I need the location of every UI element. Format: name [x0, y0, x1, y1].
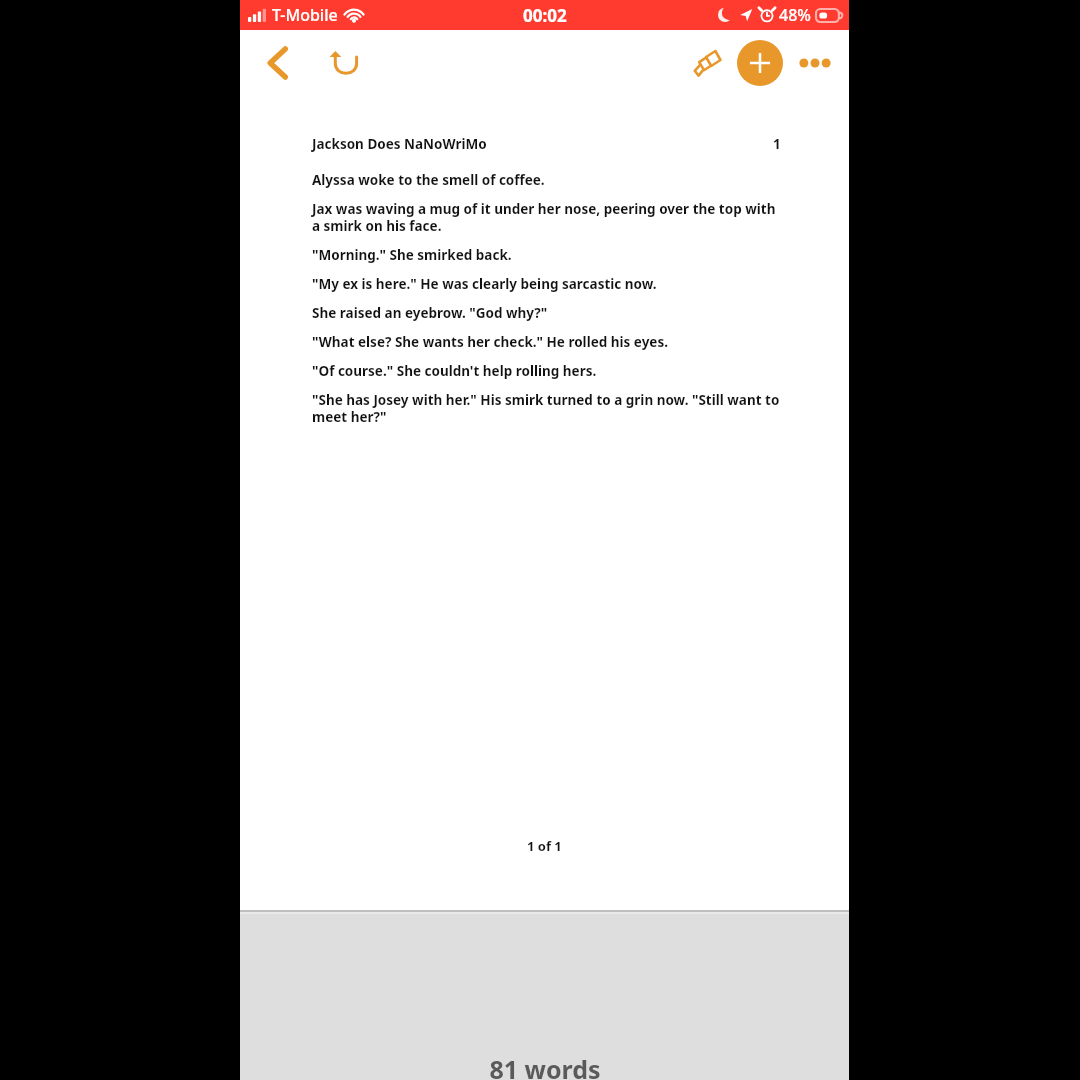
- staticText: Jax was waving a mug of it under her nos…: [312, 200, 781, 235]
- button[interactable]: Undo: [316, 35, 372, 91]
- button[interactable]: Add: [737, 40, 783, 86]
- staticText: She raised an eyebrow. "God why?": [312, 304, 548, 322]
- staticText: T-Mobile: [272, 4, 338, 26]
- staticText: Alyssa woke to the smell of coffee.: [312, 171, 545, 189]
- staticText: 48%: [779, 4, 811, 26]
- staticText: 00:02: [523, 4, 567, 27]
- staticText: "What else? She wants her check." He rol…: [312, 333, 668, 351]
- staticText: 81 words: [489, 1052, 601, 1080]
- button[interactable]: Formatting: [681, 37, 733, 89]
- button[interactable]: More options: [789, 37, 841, 89]
- staticText: Jackson Does NaNoWriMo: [312, 135, 487, 153]
- button[interactable]: Back: [250, 35, 306, 91]
- staticText: 1: [773, 135, 781, 153]
- staticText: "Of course." She couldn't help rolling h…: [312, 362, 597, 380]
- staticText: "She has Josey with her." His smirk turn…: [312, 391, 781, 426]
- staticText: "Morning." She smirked back.: [312, 246, 512, 264]
- staticText: 1 of 1: [527, 837, 562, 855]
- staticText: "My ex is here." He was clearly being sa…: [312, 275, 657, 293]
